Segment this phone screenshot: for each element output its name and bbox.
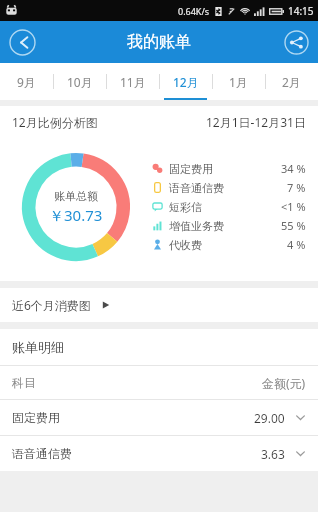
button[interactable]: 2月: [265, 63, 318, 100]
staticText: 语音通信费: [169, 181, 224, 195]
staticText: 4 %: [287, 237, 306, 252]
button[interactable]: 近6个月消费图: [0, 288, 318, 322]
staticText: 10月: [67, 74, 93, 90]
staticText: 短彩信: [169, 200, 202, 214]
staticText: 9月: [17, 74, 36, 90]
staticText: 金额(元): [262, 375, 306, 391]
staticText: 3.63: [261, 446, 285, 462]
button[interactable]: 1月: [212, 63, 265, 100]
button[interactable]: 9月: [0, 63, 53, 100]
staticText: 账单总额: [54, 189, 98, 203]
button[interactable]: 固定费用: [0, 400, 318, 435]
staticText: 0.64K/s: [178, 5, 210, 17]
button[interactable]: 语音通信费: [152, 178, 306, 197]
staticText: 34 %: [281, 161, 306, 176]
button[interactable]: 短彩信: [152, 197, 306, 216]
staticText: 11月: [120, 74, 146, 90]
staticText: 增值业务费: [169, 219, 224, 233]
staticText: 代收费: [169, 238, 202, 252]
staticText: 1月: [229, 74, 248, 90]
button[interactable]: 增值业务费: [152, 216, 306, 235]
staticText: 我的账单: [127, 32, 191, 52]
button[interactable]: 代收费: [152, 235, 306, 254]
button[interactable]: 固定费用: [152, 159, 306, 178]
staticText: ￥30.73: [49, 205, 103, 225]
button[interactable]: Share: [284, 30, 309, 55]
staticText: 12月: [173, 74, 199, 90]
staticText: <1 %: [281, 199, 306, 214]
button[interactable]: 12月: [159, 63, 212, 100]
staticText: 12月比例分析图: [12, 114, 98, 130]
staticText: 近6个月消费图: [12, 297, 91, 313]
staticText: 固定费用: [12, 410, 60, 425]
staticText: 14:15: [288, 4, 314, 18]
button[interactable]: 语音通信费: [0, 436, 318, 471]
staticText: 账单明细: [12, 339, 64, 355]
staticText: 7 %: [287, 180, 306, 195]
staticText: 2月: [282, 74, 301, 90]
staticText: 12月1日-12月31日: [206, 114, 306, 130]
staticText: 55 %: [281, 218, 306, 233]
staticText: 29.00: [254, 410, 285, 426]
button[interactable]: 10月: [53, 63, 106, 100]
button[interactable]: 11月: [106, 63, 159, 100]
button[interactable]: Back: [9, 29, 36, 56]
staticText: 固定费用: [169, 162, 213, 176]
staticText: 语音通信费: [12, 446, 72, 461]
staticText: 科目: [12, 375, 36, 390]
